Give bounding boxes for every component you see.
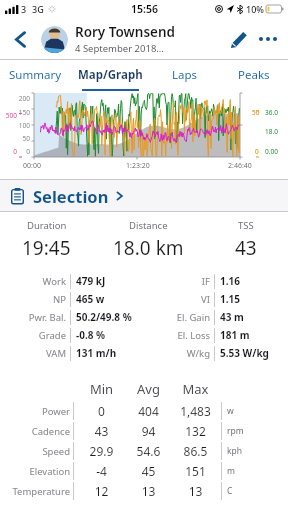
button[interactable]: Edit (223, 24, 253, 54)
staticText: 18.0 km (113, 235, 184, 261)
staticText: 10% (246, 3, 264, 15)
staticText: 43 (78, 423, 125, 439)
staticText: rpm (227, 425, 244, 437)
staticText: 3 (21, 3, 27, 15)
staticText: 100 (13, 121, 30, 130)
button[interactable]: More options (253, 24, 283, 54)
staticText: 43 (235, 235, 257, 261)
staticText: 1,483 (172, 403, 219, 419)
staticText: 132 (172, 423, 219, 439)
staticText: Max (172, 380, 219, 398)
staticText: VI (144, 293, 210, 306)
staticText: Map/Graph (78, 67, 143, 83)
staticText: 1.16 (220, 274, 240, 288)
staticText: Elevation (0, 465, 70, 478)
staticText: 479 kJ (76, 274, 106, 288)
staticText: 50 (13, 134, 30, 143)
staticText: -4 (78, 463, 125, 479)
staticText: 29.9 (78, 443, 125, 459)
staticText: 500 (0, 111, 17, 120)
button[interactable]: Summary (0, 60, 70, 91)
staticText: VAM (0, 347, 66, 360)
staticText: 404 (125, 403, 172, 419)
staticText: 0 (78, 403, 125, 419)
button[interactable]: Back (5, 24, 35, 54)
staticText: 0 (255, 147, 259, 156)
button[interactable]: Selection (0, 180, 288, 211)
staticText: 13 (172, 483, 219, 499)
staticText: 13 (125, 483, 172, 499)
staticText: C (227, 485, 233, 497)
staticText: Summary (9, 67, 61, 83)
staticText: NP (0, 293, 66, 306)
staticText: Speed (0, 445, 70, 458)
staticText: 19:45 (22, 235, 71, 261)
staticText: El. Loss (144, 329, 210, 342)
staticText: Grade (0, 329, 66, 342)
staticText: Power (0, 405, 70, 418)
staticText: Selection (33, 185, 109, 207)
staticText: 0 (0, 147, 17, 156)
staticText: 45 (125, 463, 172, 479)
staticText: 465 w (76, 292, 105, 306)
button[interactable]: Peaks (219, 60, 288, 91)
staticText: Distance (129, 219, 168, 232)
staticText: 4 September 2018… (75, 42, 164, 55)
staticText: 0 (13, 147, 30, 156)
button[interactable]: Map/Graph (70, 60, 150, 91)
staticText: Cadence (0, 425, 70, 438)
staticText: 94 (125, 423, 172, 439)
staticText: Min (78, 380, 125, 398)
staticText: 15:56 (131, 2, 158, 16)
staticText: 150 (13, 108, 30, 117)
staticText: W/kg (144, 347, 210, 360)
staticText: TSS (238, 219, 254, 232)
staticText: 00:00 (23, 161, 41, 171)
staticText: Laps (172, 67, 198, 83)
staticText: 54.6 (125, 443, 172, 459)
staticText: kph (227, 445, 243, 457)
staticText: -0.8 % (76, 328, 106, 342)
staticText: m (227, 465, 235, 477)
staticText: 0.00 (265, 147, 278, 156)
staticText: 50 (252, 108, 260, 117)
staticText: IF (144, 275, 210, 288)
staticText: 3G (32, 3, 44, 15)
staticText: El. Gain (144, 311, 210, 324)
staticText: 36.0 (265, 108, 278, 117)
staticText: 1.15 (220, 292, 240, 306)
staticText: 2:46:40 (228, 161, 252, 171)
staticText: Temperature (0, 485, 70, 498)
staticText: 12 (78, 483, 125, 499)
button[interactable]: Laps (150, 60, 219, 91)
staticText: Rory Townsend (75, 23, 176, 41)
staticText: Pwr. Bal. (0, 311, 66, 324)
staticText: 5.53 W/kg (220, 346, 269, 360)
staticText: 1:23:20 (126, 161, 150, 171)
staticText: Avg (125, 380, 172, 398)
staticText: 151 (172, 463, 219, 479)
staticText: 86.5 (172, 443, 219, 459)
staticText: 181 m (220, 328, 250, 342)
staticText: w (227, 405, 234, 417)
staticText: Work (0, 275, 66, 288)
staticText: Duration (27, 219, 67, 232)
staticText: Peaks (238, 67, 270, 83)
staticText: 43 m (220, 310, 244, 324)
staticText: 18.0 (265, 127, 278, 136)
staticText: 131 m/h (76, 346, 117, 360)
staticText: 50.2/49.8 % (76, 310, 132, 324)
staticText: 200 (13, 94, 30, 103)
